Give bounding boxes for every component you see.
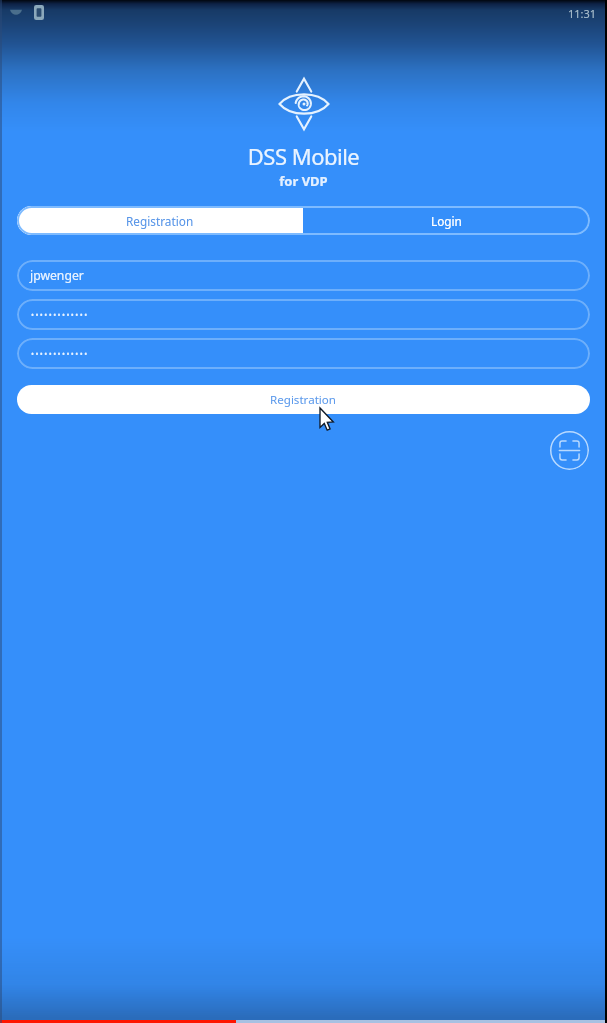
staticText: Login [431,213,462,229]
button[interactable]: ••••••••••••• [17,338,590,369]
button[interactable]: jpwenger [17,260,590,291]
staticText: ••••••••••••• [31,309,89,320]
button[interactable]: Registration [17,385,590,414]
staticText: Registration [126,213,194,229]
button[interactable]: Login [303,206,590,235]
button[interactable]: Registration [17,206,303,235]
staticText: ••••••••••••• [31,348,89,359]
staticText: 11:31 [568,6,597,21]
button[interactable]: ••••••••••••• [17,299,590,330]
staticText: for VDP [0,172,607,190]
staticText: DSS Mobile [0,141,607,171]
staticText: Registration [270,392,337,408]
button[interactable]: Scan QR code [549,430,589,470]
staticText: jpwenger [30,267,84,284]
